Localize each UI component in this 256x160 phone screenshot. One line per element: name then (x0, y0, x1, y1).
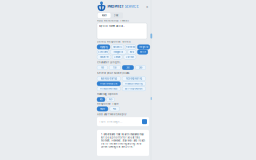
staticText: Yes (99, 98, 102, 101)
button[interactable]: Humorous (125, 45, 136, 49)
staticText: Health/Medicine (100, 82, 117, 85)
button[interactable]: Educative (97, 55, 111, 59)
button[interactable]: Chat (111, 13, 122, 18)
staticText: 150 (113, 66, 116, 69)
staticText: Add any Tweet/Reply (97, 113, 126, 116)
staticText: Select your Niche/Class (97, 71, 129, 74)
staticText: Add Reference Tweet (97, 19, 129, 22)
button[interactable]: Health/Medicine (97, 82, 120, 86)
button[interactable]: Tech/Engineering (122, 76, 146, 81)
staticText: Witty (140, 51, 146, 53)
staticText: × (146, 4, 148, 9)
staticText: Character Length: (97, 61, 121, 64)
staticText: Insightful (139, 46, 149, 48)
staticText: Bold (130, 51, 134, 53)
button[interactable]: Confident (97, 50, 109, 54)
staticText: Educative (99, 56, 108, 58)
staticText: Hashtag Option (97, 92, 118, 96)
button[interactable]: Curious (124, 55, 136, 59)
staticText: Confident (98, 51, 108, 53)
button[interactable]: Yes (97, 97, 105, 102)
staticText: Curious (126, 56, 134, 58)
button[interactable]: 150 (109, 65, 121, 70)
staticText: “I understand that health insurance may … (100, 133, 144, 148)
staticText: Response Type (97, 102, 119, 105)
button[interactable]: Witty (137, 50, 148, 54)
button[interactable]: Sarcastic (111, 45, 124, 49)
staticText: Fitness/Wellness (100, 87, 117, 90)
button[interactable]: Business/Startup (97, 76, 120, 81)
staticText: Reply (100, 107, 105, 110)
staticText: Thoughtful (113, 51, 123, 53)
staticText: Humorous (126, 46, 136, 48)
staticText: Finance/Investing (125, 82, 142, 85)
button[interactable]: Insightful (137, 45, 150, 49)
staticText: Business/Startup (101, 77, 117, 80)
staticText: PROPHET (107, 4, 123, 9)
button[interactable]: Reach (98, 13, 111, 18)
staticText: Sarcastic (113, 46, 122, 48)
staticText: Chat (114, 14, 119, 17)
staticText: Tech/Engineering (126, 77, 142, 80)
button[interactable]: 200 (122, 65, 134, 70)
button[interactable]: 280 (135, 65, 146, 70)
button[interactable]: Casual (112, 55, 122, 59)
staticText: 100 (101, 66, 104, 69)
staticText: 200 (126, 66, 129, 69)
staticText: SERVICE (125, 4, 139, 9)
button[interactable]: Reply (97, 107, 108, 111)
button[interactable]: Engaging (97, 45, 110, 49)
button[interactable]: No (107, 97, 115, 102)
staticText: Self-Improvement (125, 87, 143, 90)
staticText: My old tweet about… (99, 25, 125, 28)
staticText: Post (113, 107, 117, 110)
button[interactable]: Fitness/Wellness (97, 87, 120, 91)
staticText: Engaging (99, 46, 107, 48)
button[interactable]: Self-Improvement (122, 87, 146, 91)
button[interactable]: Thoughtful (110, 50, 126, 54)
button[interactable]: 100 (97, 65, 107, 70)
button[interactable]: Post (110, 107, 120, 111)
staticText: Casual (114, 56, 121, 58)
button[interactable]: Bold (128, 50, 136, 54)
staticText: Reach (102, 14, 107, 17)
staticText: Type a message… (99, 120, 122, 123)
staticText: Select Response Tones: (97, 40, 131, 43)
staticText: 280 (139, 66, 142, 69)
button[interactable]: Finance/Investing (122, 82, 146, 86)
button[interactable]: Close (145, 4, 149, 8)
staticText: No (109, 98, 112, 101)
button[interactable]: Send (142, 119, 147, 124)
